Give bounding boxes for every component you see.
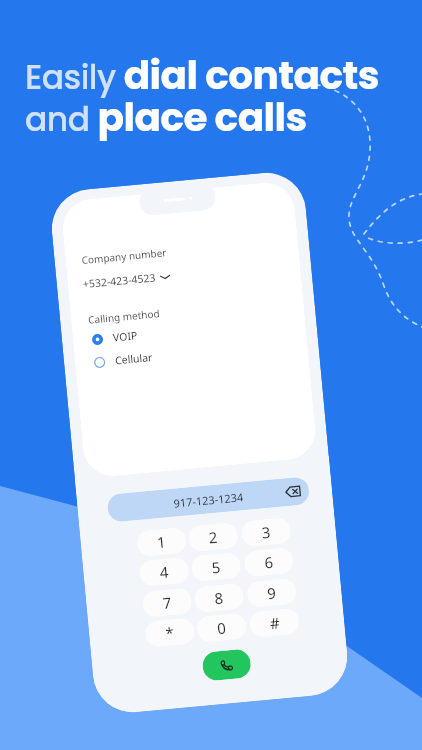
button[interactable]: 8: [193, 583, 244, 613]
staticText: 9: [266, 583, 277, 603]
staticText: Company number: [81, 245, 167, 267]
staticText: 7: [162, 592, 173, 613]
staticText: 0: [216, 617, 227, 638]
button[interactable]: 4: [139, 557, 190, 587]
staticText: Cellular: [114, 350, 153, 367]
button[interactable]: Backspace: [284, 483, 302, 500]
staticText: VOIP: [112, 328, 138, 344]
staticText: Calling method: [87, 306, 160, 327]
button[interactable]: 5: [190, 552, 242, 582]
staticText: 8: [213, 587, 224, 608]
staticText: 4: [159, 561, 170, 582]
staticText: 5: [211, 557, 221, 577]
button[interactable]: 2: [188, 522, 239, 552]
staticText: 917-123-1234: [173, 489, 245, 511]
button[interactable]: 917-123-1234: [106, 476, 310, 523]
staticText: #: [269, 612, 281, 633]
staticText: 3: [261, 522, 271, 543]
button[interactable]: *: [144, 617, 195, 648]
button[interactable]: VOIP: [91, 322, 196, 347]
button[interactable]: 1: [136, 527, 187, 557]
button[interactable]: 3: [240, 517, 292, 547]
button[interactable]: Call: [201, 648, 252, 682]
button[interactable]: 6: [243, 547, 294, 577]
staticText: 1: [156, 532, 167, 552]
button[interactable]: 9: [246, 578, 297, 608]
staticText: 6: [263, 552, 274, 572]
staticText: 2: [208, 527, 219, 547]
button[interactable]: 0: [196, 612, 247, 643]
staticText: +532-423-4523: [82, 270, 156, 291]
button[interactable]: #: [249, 608, 300, 638]
staticText: Easily dial contacts and place calls: [25, 48, 379, 145]
staticText: *: [164, 622, 175, 643]
button[interactable]: Cellular: [93, 345, 198, 370]
button[interactable]: 7: [142, 587, 193, 618]
